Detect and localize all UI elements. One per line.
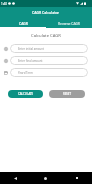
button[interactable]: Home xyxy=(30,172,61,184)
staticText: Calculate CAGR xyxy=(0,33,92,39)
button[interactable]: Back xyxy=(0,172,30,184)
staticText: Years/Term xyxy=(18,71,33,75)
button[interactable]: Enter final amount xyxy=(10,56,88,65)
staticText: CAGR xyxy=(19,21,28,26)
button[interactable]: CAGR xyxy=(0,18,46,28)
button[interactable]: Enter initial amount xyxy=(10,44,88,53)
staticText: Reverse CAGR xyxy=(58,21,80,25)
button[interactable]: RESET xyxy=(49,90,85,98)
staticText: Enter initial amount xyxy=(18,47,45,51)
staticText: Enter final amount xyxy=(18,59,43,63)
button[interactable]: Reverse CAGR xyxy=(46,18,92,28)
button[interactable]: CALCULATE xyxy=(8,90,43,98)
button[interactable]: Recent apps xyxy=(61,172,92,184)
staticText: RESET xyxy=(63,92,71,96)
staticText: CAGR Calculator xyxy=(32,10,60,15)
staticText: CALCULATE xyxy=(18,92,34,96)
staticText: 1:40 xyxy=(1,2,7,6)
button[interactable]: Years/Term xyxy=(10,68,88,77)
